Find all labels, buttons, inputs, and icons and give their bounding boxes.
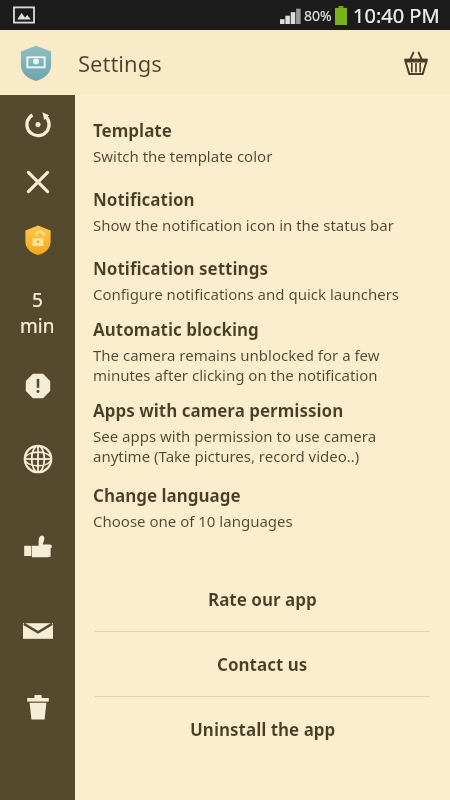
button[interactable]: App icon: [18, 45, 54, 81]
staticText: Switch the template color: [93, 146, 273, 166]
staticText: Rate our app: [208, 588, 317, 611]
button[interactable]: Unlock: [0, 211, 75, 269]
staticText: Contact us: [217, 653, 308, 676]
staticText: Template: [93, 119, 172, 142]
button[interactable]: Notification settings: [75, 257, 450, 304]
button[interactable]: Language: [0, 415, 75, 503]
button[interactable]: Uninstall the app: [75, 697, 450, 761]
button[interactable]: Notification: [75, 188, 450, 235]
staticText: The camera remains unblocked for a few m…: [93, 345, 380, 385]
button[interactable]: Template: [75, 119, 450, 166]
staticText: Apps with camera permission: [93, 399, 344, 422]
button[interactable]: Block: [0, 357, 75, 415]
button[interactable]: Contact us: [75, 632, 450, 696]
staticText: Configure notifications and quick launch…: [93, 284, 400, 304]
button[interactable]: Uninstall: [0, 671, 75, 743]
staticText: See apps with permission to use camera a…: [93, 426, 377, 466]
button[interactable]: Contact: [0, 591, 75, 671]
staticText: 5: [32, 287, 43, 313]
button[interactable]: Change language: [75, 484, 450, 531]
button[interactable]: 5: [0, 269, 75, 357]
button[interactable]: Store: [396, 43, 436, 83]
staticText: Automatic blocking: [93, 318, 259, 341]
staticText: min: [20, 313, 55, 339]
staticText: 80%: [304, 6, 332, 25]
staticText: Notification: [93, 188, 195, 211]
button[interactable]: Apps with camera permission: [75, 399, 450, 466]
button[interactable]: Rotate camera: [0, 95, 75, 153]
staticText: Notification settings: [93, 257, 268, 280]
staticText: Settings: [78, 48, 162, 78]
staticText: 10:40 PM: [353, 2, 440, 29]
button[interactable]: Rate our app: [75, 567, 450, 631]
button[interactable]: Close: [0, 153, 75, 211]
staticText: Choose one of 10 languages: [93, 511, 293, 531]
staticText: Change language: [93, 484, 241, 507]
staticText: Show the notification icon in the status…: [93, 215, 394, 235]
button[interactable]: Automatic blocking: [75, 318, 450, 385]
staticText: Uninstall the app: [190, 718, 336, 741]
button[interactable]: Rate: [0, 503, 75, 591]
